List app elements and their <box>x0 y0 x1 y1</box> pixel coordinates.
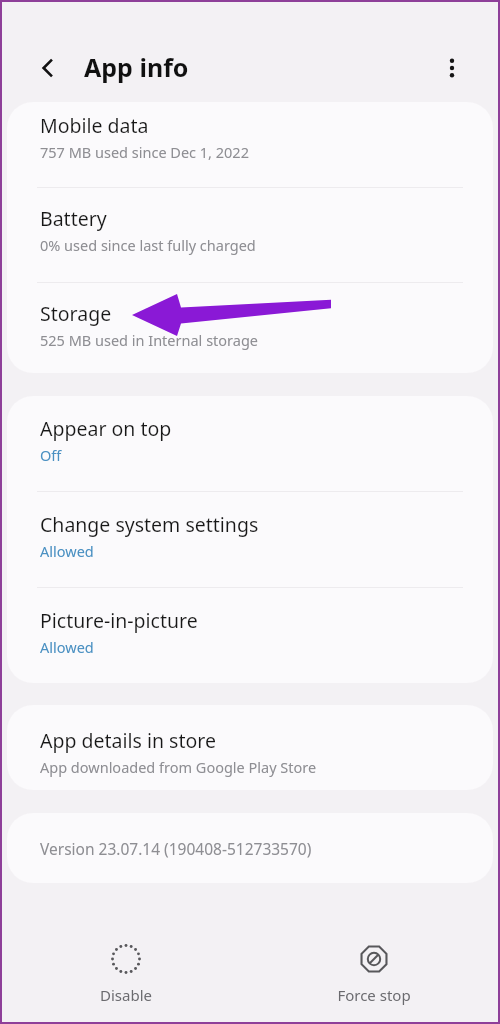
staticText: 757 MB used since Dec 1, 2022 <box>40 142 249 162</box>
staticText: Storage <box>40 300 112 327</box>
button[interactable]: Version 23.07.14 (190408-512733570) <box>7 813 493 883</box>
staticText: Change system settings <box>40 511 259 538</box>
staticText: Appear on top <box>40 415 172 442</box>
button[interactable]: Force stop <box>250 922 498 1022</box>
button[interactable]: Appear on top <box>7 396 493 491</box>
staticText: Version 23.07.14 (190408-512733570) <box>40 838 312 859</box>
staticText: App info <box>84 50 189 84</box>
button[interactable]: App details in store <box>7 705 493 790</box>
button[interactable]: Storage <box>7 283 493 373</box>
staticText: App downloaded from Google Play Store <box>40 757 317 777</box>
staticText: App details in store <box>40 727 216 754</box>
button[interactable]: Picture-in-picture <box>7 588 493 683</box>
button[interactable]: Back <box>26 46 70 90</box>
staticText: 0% used since last fully charged <box>40 235 256 255</box>
staticText: 525 MB used in Internal storage <box>40 330 259 350</box>
staticText: Allowed <box>40 541 94 561</box>
button[interactable]: More options <box>430 46 474 90</box>
button[interactable]: Disable <box>2 922 250 1022</box>
button[interactable]: Battery <box>7 188 493 282</box>
button[interactable]: Mobile data <box>7 102 493 187</box>
staticText: Mobile data <box>40 112 149 139</box>
staticText: Disable <box>100 985 152 1005</box>
button[interactable]: Change system settings <box>7 492 493 587</box>
staticText: Picture-in-picture <box>40 607 198 634</box>
staticText: Allowed <box>40 637 94 657</box>
staticText: Off <box>40 445 62 465</box>
staticText: Force stop <box>337 985 411 1005</box>
staticText: Battery <box>40 205 107 232</box>
